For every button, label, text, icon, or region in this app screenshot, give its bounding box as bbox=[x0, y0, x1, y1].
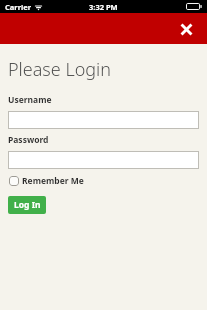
staticText: Password bbox=[8, 134, 49, 146]
staticText: Username bbox=[8, 94, 52, 106]
staticText: Carrier bbox=[5, 2, 32, 12]
button[interactable]: Log In bbox=[8, 196, 46, 214]
staticText: Remember Me bbox=[22, 175, 84, 187]
staticText: Log In bbox=[14, 199, 41, 211]
button[interactable]: Remember Me bbox=[8, 173, 84, 189]
button[interactable] bbox=[8, 151, 199, 169]
staticText: 3:32 PM bbox=[89, 2, 118, 12]
button[interactable]: Close bbox=[176, 19, 196, 39]
staticText: Please Login bbox=[8, 57, 111, 82]
button[interactable] bbox=[8, 111, 199, 129]
